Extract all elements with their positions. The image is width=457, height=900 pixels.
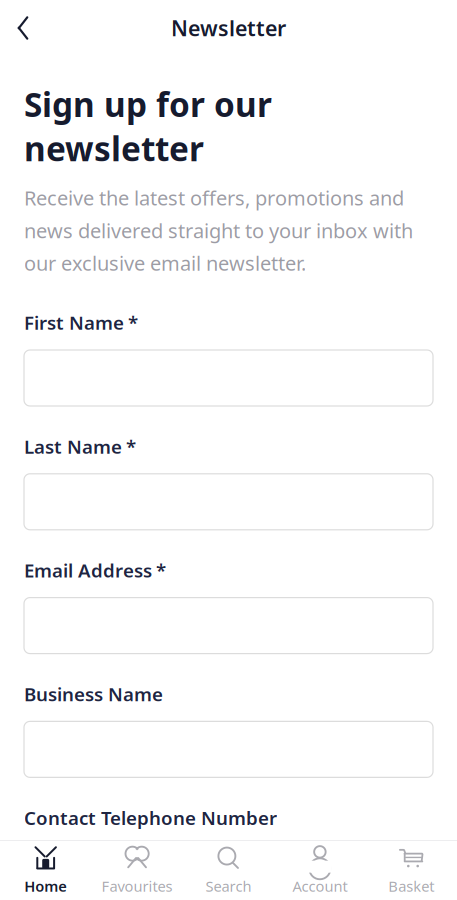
button[interactable]: First Name [24, 350, 433, 406]
staticText: Business Name [24, 682, 163, 706]
staticText: Email Address [24, 558, 152, 583]
staticText: First Name [24, 310, 124, 335]
staticText: Account [292, 876, 347, 896]
staticText: Sign up for our newsletter [24, 82, 272, 170]
staticText: * [126, 434, 136, 459]
button[interactable]: Account [274, 841, 366, 899]
button[interactable]: Home [0, 841, 91, 899]
staticText: Newsletter [171, 14, 286, 42]
button[interactable]: Business Name [24, 721, 433, 777]
button[interactable]: Basket [366, 841, 457, 899]
staticText: Contact Telephone Number [24, 805, 277, 830]
button[interactable]: Email Address [24, 598, 433, 654]
button[interactable]: Search [183, 841, 274, 899]
button[interactable]: Contact Telephone Number [24, 845, 433, 900]
button[interactable]: Back [0, 6, 46, 50]
staticText: Search [205, 876, 251, 896]
staticText: Basket [388, 876, 434, 896]
button[interactable]: Favourites [91, 841, 183, 899]
staticText: Receive the latest offers, promotions an… [24, 184, 413, 276]
staticText: * [156, 558, 166, 583]
staticText: Favourites [102, 876, 173, 896]
staticText: Last Name [24, 434, 122, 459]
staticText: * [128, 310, 138, 335]
staticText: Home [24, 876, 67, 896]
button[interactable]: Last Name [24, 474, 433, 530]
